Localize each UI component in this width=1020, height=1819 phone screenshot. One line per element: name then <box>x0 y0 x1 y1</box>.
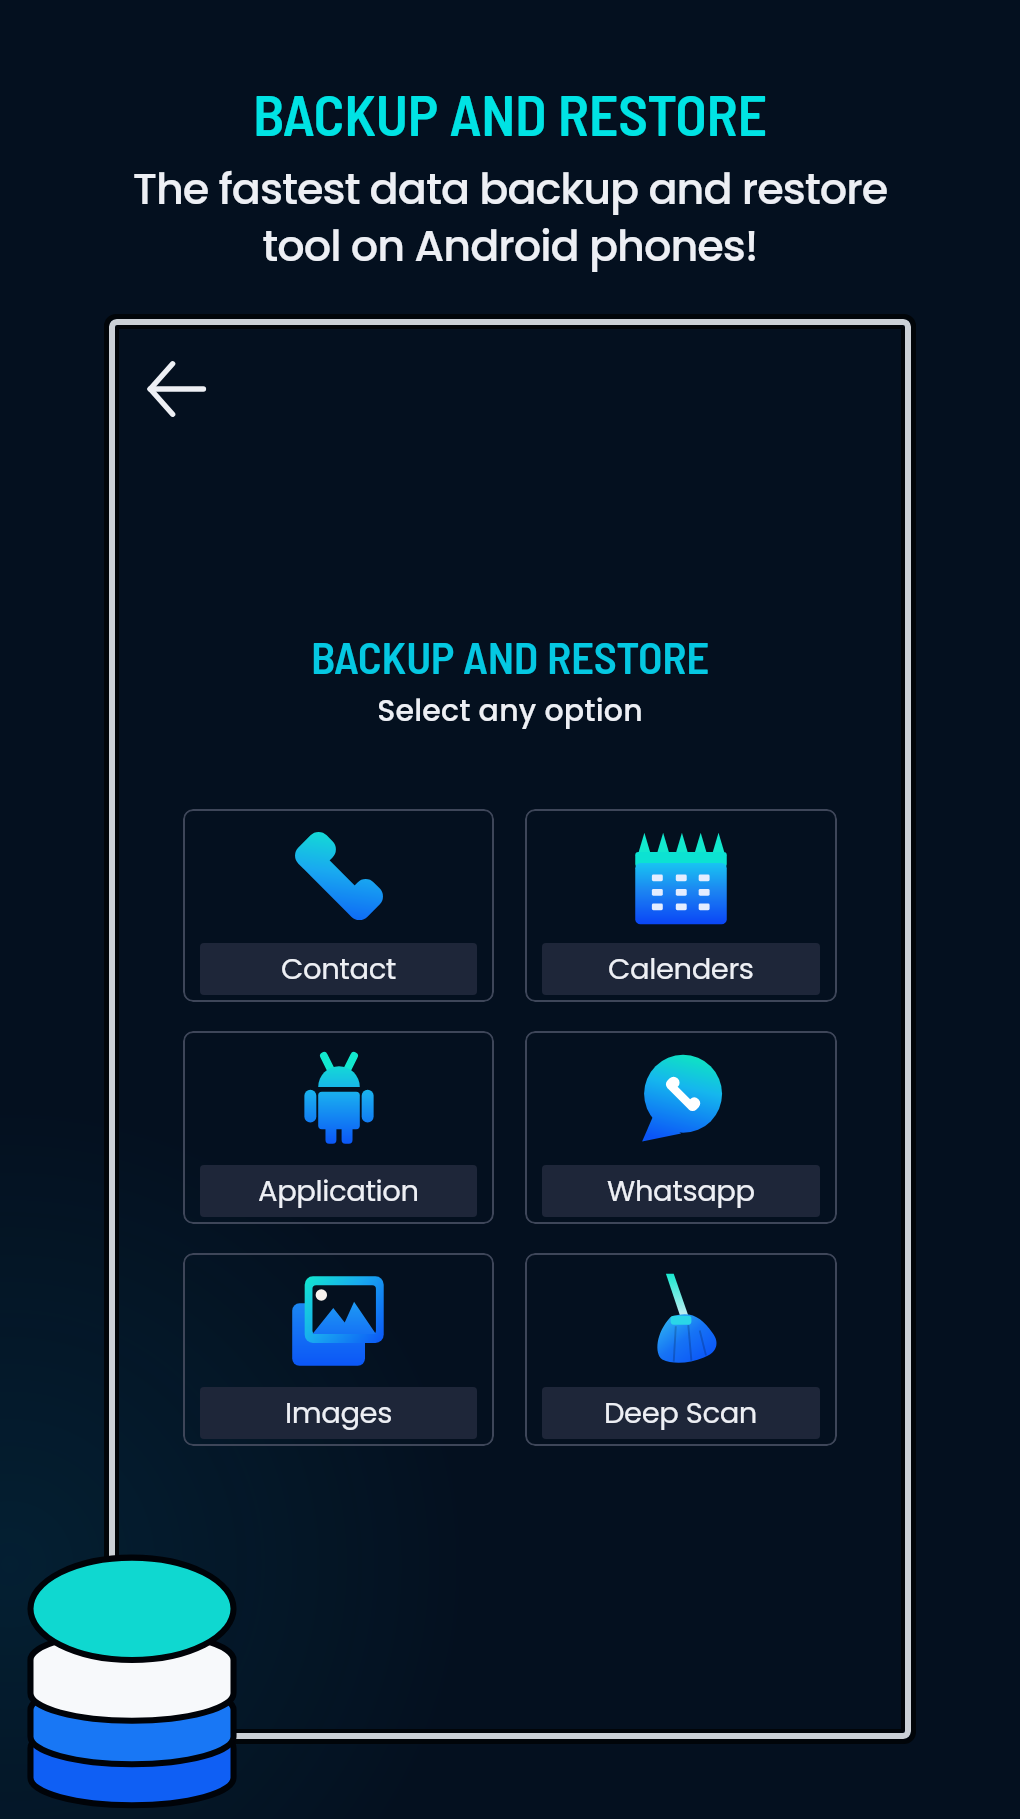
button[interactable]: Deep Scan <box>525 1253 837 1446</box>
staticText: BACKUP AND RESTORE <box>0 78 1020 148</box>
staticText: Select any option <box>119 690 901 732</box>
staticText: Images <box>285 1393 392 1434</box>
button[interactable]: Application <box>183 1031 494 1224</box>
staticText: Application <box>258 1171 419 1212</box>
staticText: Contact <box>281 949 397 990</box>
staticText: The fastest data backup and restore tool… <box>0 159 1020 276</box>
button[interactable]: Whatsapp <box>525 1031 837 1224</box>
button[interactable]: Images <box>183 1253 494 1446</box>
button[interactable]: Contact <box>183 809 494 1002</box>
staticText: BACKUP AND RESTORE <box>119 629 901 683</box>
button[interactable]: Back <box>142 355 210 423</box>
button[interactable]: Calenders <box>525 809 837 1002</box>
staticText: Whatsapp <box>607 1171 755 1212</box>
staticText: Calenders <box>608 949 754 990</box>
staticText: Deep Scan <box>604 1393 758 1434</box>
